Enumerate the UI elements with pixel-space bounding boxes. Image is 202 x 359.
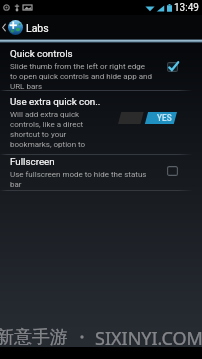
staticText: Use fullscreen mode to hide the status b… bbox=[10, 170, 152, 189]
staticText: Use extra quick con.. bbox=[10, 96, 101, 107]
staticText: Will add extra quick controls, like a di… bbox=[10, 110, 96, 149]
button[interactable]: Navigate up to Labs bbox=[0, 15, 202, 39]
staticText: Slide thumb from the left or right edge … bbox=[10, 62, 152, 91]
button[interactable]: Fullscreen bbox=[0, 155, 202, 190]
staticText: Quick controls bbox=[10, 48, 73, 59]
button[interactable]: Fullscreen checkbox, unchecked bbox=[165, 164, 179, 178]
staticText: SIXINYI.COM bbox=[95, 326, 202, 351]
button[interactable]: Use extra quick con.. bbox=[0, 91, 202, 154]
staticText: Fullscreen bbox=[10, 156, 55, 167]
staticText: 13:49 bbox=[174, 2, 199, 14]
button[interactable]: Quick controls checkbox, checked bbox=[165, 60, 179, 74]
staticText: Labs bbox=[26, 22, 49, 34]
button[interactable]: Use extra quick controls switch, on bbox=[118, 112, 177, 124]
button[interactable]: Quick controls bbox=[0, 43, 202, 90]
staticText: YES bbox=[157, 113, 172, 123]
staticText: 新意手游 bbox=[0, 326, 68, 349]
